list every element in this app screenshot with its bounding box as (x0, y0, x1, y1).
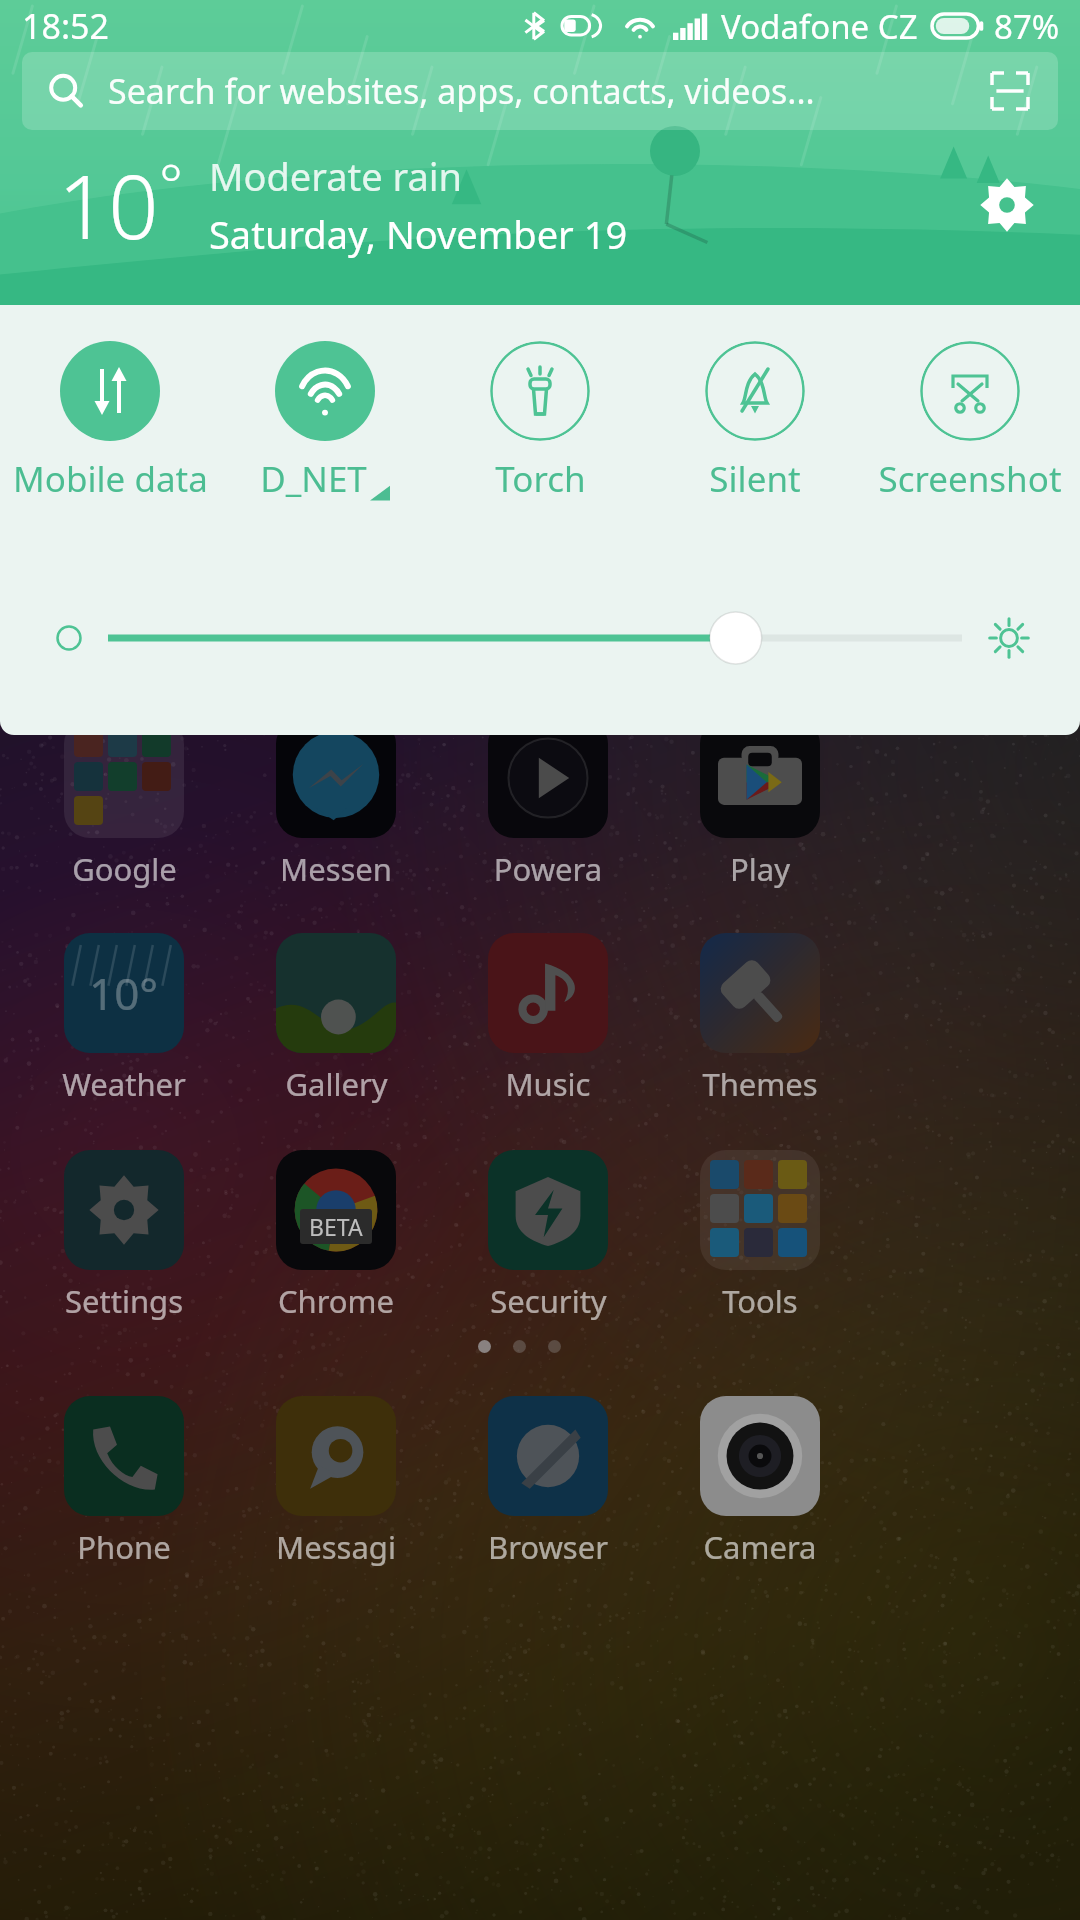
staticText: ° (159, 145, 183, 221)
button[interactable]: D_NET (225, 341, 425, 503)
staticText: Phone (77, 1526, 171, 1568)
staticText: Security (490, 1280, 607, 1322)
button[interactable]: Google (62, 718, 186, 890)
button[interactable]: Themes (698, 933, 822, 1105)
button[interactable]: Messaging (274, 1396, 398, 1568)
staticText: 10 (58, 145, 159, 265)
staticText: Moderate rain (209, 150, 463, 202)
staticText: D_NET (260, 455, 367, 503)
staticText: Settings (65, 1280, 183, 1322)
button[interactable]: Camera (698, 1396, 822, 1568)
button[interactable]: Torch (440, 341, 640, 503)
staticText: Torch (495, 455, 586, 503)
button[interactable]: 10 (58, 145, 1044, 265)
button[interactable]: Search for websites, apps, contacts, vid… (22, 52, 1058, 130)
button[interactable]: Tools (698, 1150, 822, 1322)
staticText: Saturday, November 19 (209, 208, 628, 260)
staticText: 87% (994, 4, 1060, 49)
staticText: Mobile data (13, 455, 208, 503)
staticText: Weather (62, 1063, 186, 1105)
button[interactable]: Gallery (274, 933, 398, 1105)
staticText: Silent (709, 455, 801, 503)
staticText: Camera (703, 1526, 817, 1568)
button[interactable]: Mobile data (10, 341, 210, 503)
staticText: 10° (89, 963, 159, 1023)
staticText: Vodafone CZ (721, 4, 918, 49)
button[interactable]: Brightness (56, 603, 1030, 673)
button[interactable]: Play Store (698, 718, 822, 890)
staticText: Poweramp (486, 848, 610, 890)
staticText: Messenger (274, 848, 398, 890)
staticText: Tools (722, 1280, 798, 1322)
staticText: Browser (488, 1526, 608, 1568)
staticText: Gallery (285, 1063, 388, 1105)
button[interactable]: Phone (62, 1396, 186, 1568)
staticText: Messaging (274, 1526, 398, 1568)
staticText: 18:52 (22, 3, 109, 49)
staticText: BETA (309, 1211, 363, 1242)
staticText: Chrome Beta (274, 1280, 398, 1322)
staticText: Screenshot (878, 455, 1062, 503)
button[interactable]: Settings (970, 168, 1044, 242)
staticText: Play Store (698, 848, 822, 890)
button[interactable]: Screenshot (870, 341, 1070, 503)
button[interactable]: Scan code (986, 67, 1034, 115)
button[interactable]: Settings (62, 1150, 186, 1322)
button[interactable]: Browser (486, 1396, 610, 1568)
button[interactable]: Security (486, 1150, 610, 1322)
button[interactable]: Messenger (274, 718, 398, 890)
staticText: Themes (702, 1063, 818, 1105)
button[interactable]: 10° (62, 933, 186, 1105)
staticText: Music (505, 1063, 591, 1105)
button[interactable]: BETA (274, 1150, 398, 1322)
button[interactable]: Music (486, 933, 610, 1105)
staticText: Google (72, 848, 177, 890)
button[interactable]: Poweramp (486, 718, 610, 890)
staticText: Search for websites, apps, contacts, vid… (108, 68, 815, 114)
button[interactable]: Silent (655, 341, 855, 503)
